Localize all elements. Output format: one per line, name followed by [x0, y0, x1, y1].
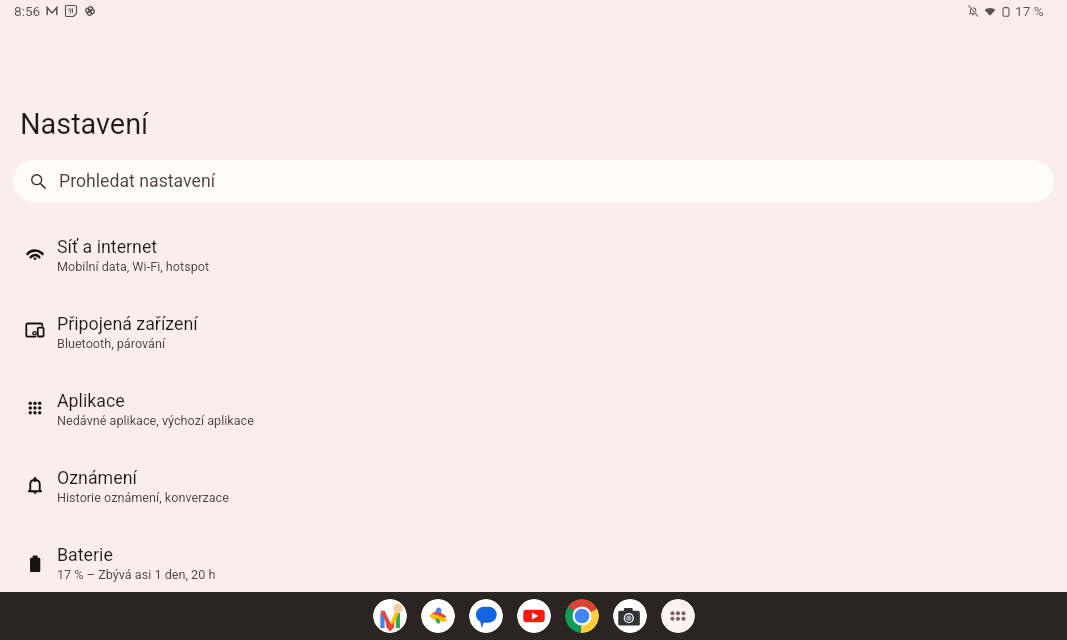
button[interactable]: Prohledat nastavení	[13, 160, 1054, 202]
button[interactable]: Síť a internet	[0, 216, 1067, 293]
button[interactable]: YouTube	[517, 599, 551, 633]
button[interactable]: Gmail	[373, 599, 407, 633]
button[interactable]: Messages	[469, 599, 503, 633]
staticText: Aplikace	[57, 390, 125, 411]
button[interactable]: Aplikace	[0, 370, 1067, 447]
button[interactable]: Chrome	[565, 599, 599, 633]
staticText: Oznámení	[57, 467, 137, 488]
staticText: Připojená zařízení	[57, 313, 198, 334]
staticText: Nedávné aplikace, výchozí aplikace	[57, 413, 254, 428]
staticText: Mobilní data, Wi-Fi, hotspot	[57, 259, 210, 274]
staticText: Baterie	[57, 544, 113, 565]
staticText: Prohledat nastavení	[59, 171, 216, 192]
button[interactable]: Baterie	[0, 524, 1067, 601]
staticText: 17 %	[1015, 3, 1044, 19]
button[interactable]: Připojená zařízení	[0, 293, 1067, 370]
button[interactable]: All apps	[661, 599, 695, 633]
staticText: Nastavení	[20, 107, 149, 141]
button[interactable]: Google Photos	[421, 599, 455, 633]
staticText: Bluetooth, párování	[57, 336, 166, 351]
button[interactable]: Oznámení	[0, 447, 1067, 524]
staticText: 17 % – Zbývá asi 1 den, 20 h	[57, 567, 216, 582]
staticText: Historie oznámení, konverzace	[57, 490, 229, 505]
button[interactable]: Camera	[613, 599, 647, 633]
staticText: Síť a internet	[57, 236, 158, 257]
staticText: 8:56	[14, 3, 41, 19]
